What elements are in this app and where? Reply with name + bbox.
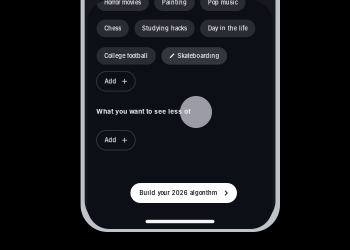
staticText: music (221, 0, 238, 6)
staticText: football (127, 52, 148, 59)
staticText: your (158, 189, 170, 196)
staticText: Add (104, 137, 116, 144)
staticText: see (154, 107, 166, 115)
staticText: Day (208, 25, 218, 32)
staticText: Add (104, 78, 116, 85)
button[interactable]: Painting (154, 0, 195, 11)
staticText: movies (122, 0, 141, 6)
button[interactable]: College (96, 47, 156, 65)
staticText: to (146, 107, 152, 115)
staticText: in (220, 25, 226, 32)
staticText: What (96, 107, 113, 115)
staticText: life (239, 25, 248, 32)
staticText: Skateboarding (177, 52, 219, 59)
button[interactable]: Pop (200, 0, 245, 11)
staticText: less (168, 107, 182, 115)
button[interactable]: Chess (96, 20, 129, 37)
button[interactable]: Studying (134, 20, 195, 37)
staticText: Studying (142, 25, 169, 32)
button[interactable]: Day (200, 20, 255, 37)
button[interactable]: Add (96, 130, 135, 150)
staticText: Pop (208, 0, 219, 6)
button[interactable]: Horror (96, 0, 149, 11)
staticText: you (115, 107, 127, 115)
staticText: College (104, 52, 125, 59)
button[interactable]: Build (130, 183, 237, 203)
button[interactable]: Add (96, 71, 135, 91)
staticText: Painting (162, 0, 187, 6)
staticText: algorithm (190, 189, 217, 196)
button[interactable]: Skateboarding (161, 47, 227, 65)
staticText: the (228, 25, 237, 32)
staticText: hacks (171, 25, 187, 32)
staticText: 2026 (172, 189, 188, 196)
staticText: want (129, 107, 144, 115)
staticText: Horror (104, 0, 120, 6)
staticText: of (184, 107, 191, 115)
staticText: Chess (104, 25, 121, 32)
staticText: Build (139, 189, 155, 196)
